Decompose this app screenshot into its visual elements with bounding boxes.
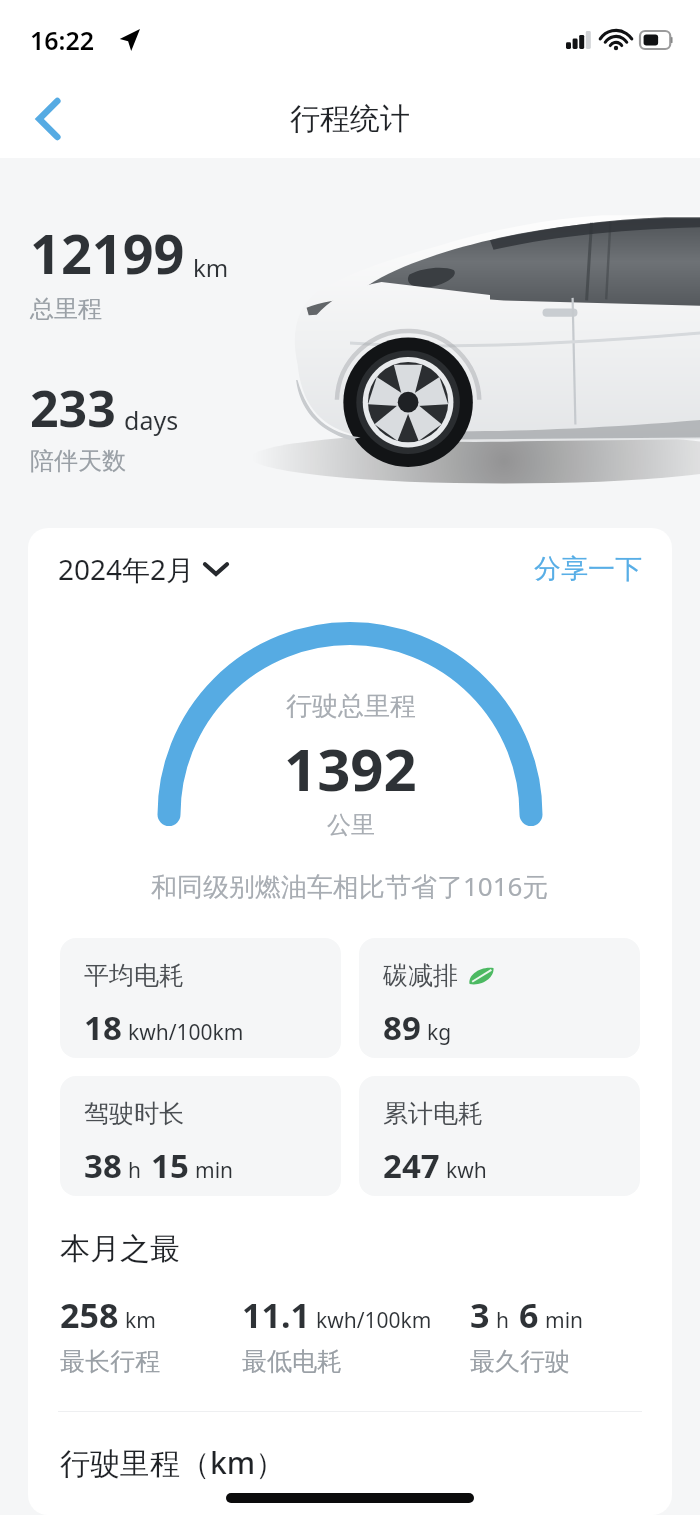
button[interactable]: 驾驶时长 xyxy=(60,1076,341,1196)
staticText: 行驶里程（km） xyxy=(60,1442,286,1483)
staticText: 行驶总里程 xyxy=(286,690,416,723)
staticText: kwh/100km xyxy=(316,1306,432,1335)
staticText: kg xyxy=(427,1018,452,1047)
staticText: min xyxy=(545,1306,584,1335)
staticText: 12199 xyxy=(30,216,185,290)
staticText: 最长行程 xyxy=(60,1346,160,1377)
staticText: kwh/100km xyxy=(128,1018,244,1047)
staticText: h xyxy=(496,1306,509,1335)
staticText: 15 xyxy=(151,1143,189,1188)
staticText: km xyxy=(125,1306,156,1335)
staticText: km xyxy=(193,251,229,284)
staticText: 233 xyxy=(30,374,116,442)
staticText: 3 xyxy=(470,1292,490,1338)
staticText: 2024年2月 xyxy=(58,550,195,588)
staticText: 最低电耗 xyxy=(242,1346,342,1377)
button[interactable]: 2024年2月 xyxy=(58,550,227,588)
staticText: 16:22 xyxy=(30,23,95,57)
button[interactable]: 返回 xyxy=(18,88,80,150)
staticText: 258 xyxy=(60,1292,119,1338)
button[interactable]: 碳减排 xyxy=(359,938,640,1058)
staticText: 碳减排 xyxy=(383,960,458,991)
staticText: 247 xyxy=(383,1143,440,1188)
staticText: 平均电耗 xyxy=(84,960,184,991)
staticText: 18 xyxy=(84,1005,122,1050)
staticText: 11.1 xyxy=(242,1292,310,1338)
staticText: 累计电耗 xyxy=(383,1098,483,1129)
staticText: 89 xyxy=(383,1005,421,1050)
staticText: 驾驶时长 xyxy=(84,1098,184,1129)
staticText: 6 xyxy=(519,1292,539,1338)
staticText: 38 xyxy=(84,1143,122,1188)
staticText: 最久行驶 xyxy=(470,1346,570,1377)
staticText: 和同级别燃油车相比节省了1016元 xyxy=(151,868,549,904)
staticText: min xyxy=(195,1156,234,1185)
staticText: 行程统计 xyxy=(290,100,410,138)
staticText: 总里程 xyxy=(30,294,102,324)
staticText: 公里 xyxy=(327,810,375,840)
staticText: days xyxy=(124,403,179,437)
button[interactable]: 分享一下 xyxy=(534,552,642,586)
button[interactable]: 平均电耗 xyxy=(60,938,341,1058)
staticText: h xyxy=(128,1156,141,1185)
staticText: 陪伴天数 xyxy=(30,446,126,476)
button[interactable]: 累计电耗 xyxy=(359,1076,640,1196)
staticText: 本月之最 xyxy=(60,1230,180,1268)
staticText: 1392 xyxy=(284,729,417,808)
staticText: kwh xyxy=(446,1156,487,1185)
staticText: 分享一下 xyxy=(534,552,642,586)
